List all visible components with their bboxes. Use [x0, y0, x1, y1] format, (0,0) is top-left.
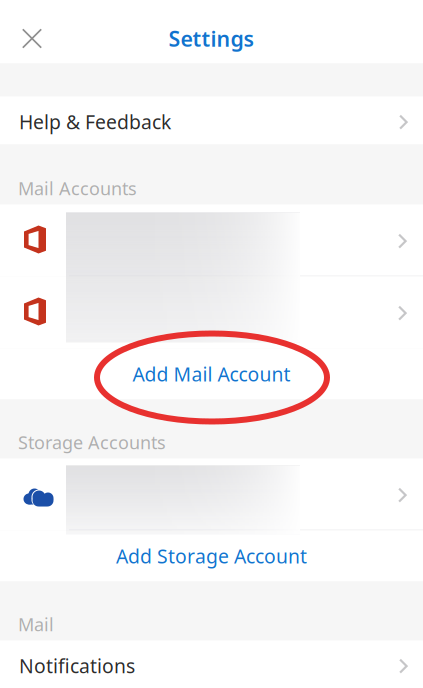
staticText: Mail — [18, 612, 54, 636]
button[interactable] — [0, 204, 423, 276]
staticText: Help & Feedback — [19, 108, 171, 135]
button[interactable]: Add Mail Account — [0, 348, 423, 399]
staticText: Add Mail Account — [132, 361, 290, 387]
staticText: Notifications — [19, 652, 135, 679]
staticText: Settings — [168, 24, 254, 53]
staticText: Mail Accounts — [18, 176, 137, 200]
button[interactable]: Close — [10, 16, 54, 60]
staticText: Storage Accounts — [18, 430, 166, 454]
button[interactable]: Add Storage Account — [0, 530, 423, 581]
button[interactable]: Help & Feedback — [0, 96, 423, 144]
button[interactable] — [0, 276, 423, 348]
button[interactable] — [0, 458, 423, 530]
button[interactable]: Notifications — [0, 640, 423, 688]
staticText: Add Storage Account — [116, 543, 307, 569]
